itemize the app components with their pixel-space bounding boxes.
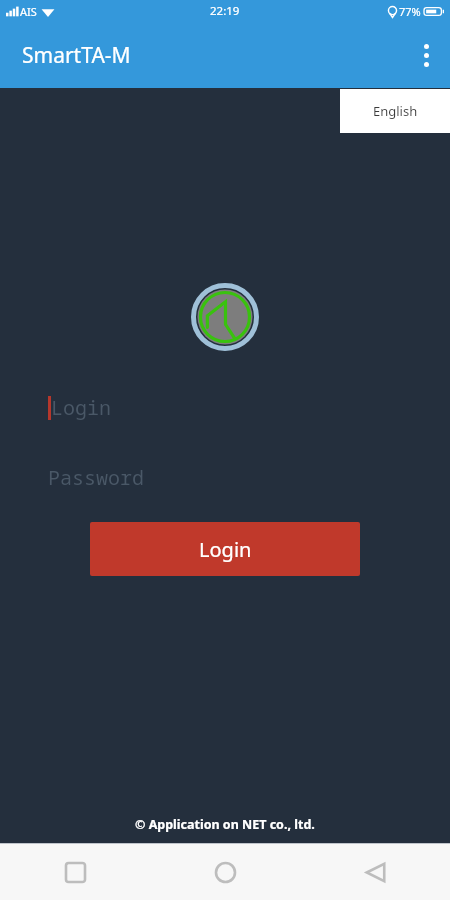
staticText: 22:19 (210, 3, 240, 19)
button[interactable]: English (340, 89, 450, 133)
staticText: SmartTA-M (22, 41, 131, 70)
button[interactable]: Recents (0, 844, 150, 900)
button[interactable]: More options (402, 22, 450, 88)
staticText: Password (48, 464, 144, 491)
staticText: 77% (399, 4, 421, 19)
staticText: Login (51, 394, 111, 421)
staticText: © Application on NET co., ltd. (135, 816, 315, 833)
button[interactable]: Back (300, 844, 450, 900)
button[interactable]: Home (150, 844, 300, 900)
staticText: AIS (20, 4, 37, 19)
button[interactable]: Login (48, 390, 402, 424)
staticText: English (373, 102, 418, 120)
button[interactable]: Login (90, 522, 360, 576)
staticText: Login (199, 536, 252, 563)
button[interactable]: Password (48, 460, 402, 494)
